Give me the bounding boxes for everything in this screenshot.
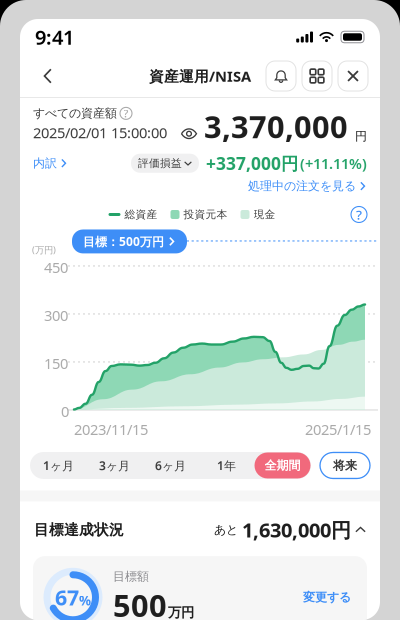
button[interactable]: Menu	[302, 61, 332, 91]
staticText: 万円	[168, 604, 194, 620]
button[interactable]: あと	[214, 516, 366, 543]
staticText: 67	[55, 583, 79, 611]
button[interactable]: 6ヶ月	[142, 452, 198, 478]
staticText: すべての資産額	[33, 106, 117, 121]
button[interactable]: 3ヶ月	[86, 452, 142, 478]
button[interactable]: Help	[351, 206, 367, 222]
staticText: 将来	[333, 458, 357, 473]
staticText: 300	[44, 305, 68, 325]
button[interactable]: 目標：500万円	[72, 229, 187, 253]
staticText: 資産運用/NISA	[149, 66, 251, 86]
staticText: 現金	[253, 208, 275, 221]
staticText: ?	[356, 206, 362, 223]
staticText: 150	[44, 353, 68, 373]
staticText: 円	[355, 129, 367, 144]
staticText: 目標達成状況	[34, 521, 124, 539]
staticText: 1年	[217, 457, 236, 473]
staticText: 3ヶ月	[99, 457, 130, 473]
staticText: 3,370,000	[204, 106, 348, 147]
button[interactable]: Notifications	[266, 61, 296, 91]
button[interactable]: 変更する	[303, 590, 351, 605]
staticText: 目標額	[113, 569, 149, 584]
staticText: 0	[61, 401, 69, 421]
staticText: 2025/1/15	[305, 419, 371, 439]
button[interactable]: 将来	[320, 452, 370, 478]
staticText: 評価損益	[138, 157, 182, 170]
staticText: 450	[44, 257, 68, 277]
staticText: 処理中の注文を見る	[248, 179, 356, 193]
staticText: 総資産	[124, 208, 157, 221]
staticText: 1,630,000円	[242, 516, 351, 543]
button[interactable]: 1ヶ月	[30, 452, 86, 478]
staticText: 目標：500万円	[83, 233, 164, 249]
button[interactable]: Close	[338, 61, 368, 91]
staticText: 全期間	[264, 458, 300, 473]
staticText: 6ヶ月	[155, 457, 186, 473]
button[interactable]: 1年	[198, 452, 254, 478]
button[interactable]: 処理中の注文を見る	[248, 179, 367, 193]
staticText: 1ヶ月	[43, 457, 74, 473]
button[interactable]: 内訳	[33, 156, 68, 171]
staticText: 500	[113, 585, 167, 620]
button[interactable]: 評価損益	[131, 154, 199, 173]
staticText: 内訳	[33, 156, 57, 171]
staticText: ?	[123, 106, 128, 120]
staticText: あと	[214, 522, 238, 537]
staticText: 変更する	[303, 590, 351, 605]
staticText: +337,000円	[206, 152, 298, 175]
staticText: %	[79, 591, 91, 609]
button[interactable]: 全期間	[254, 452, 310, 478]
staticText: 投資元本	[183, 208, 227, 221]
staticText: 2025/02/01 15:00:00	[33, 123, 167, 142]
staticText: 9:41	[35, 24, 74, 50]
staticText: (+11.11%)	[300, 153, 367, 173]
staticText: 2023/11/15	[74, 419, 148, 439]
staticText: (万円)	[32, 243, 56, 256]
button[interactable]: Back	[32, 60, 64, 92]
